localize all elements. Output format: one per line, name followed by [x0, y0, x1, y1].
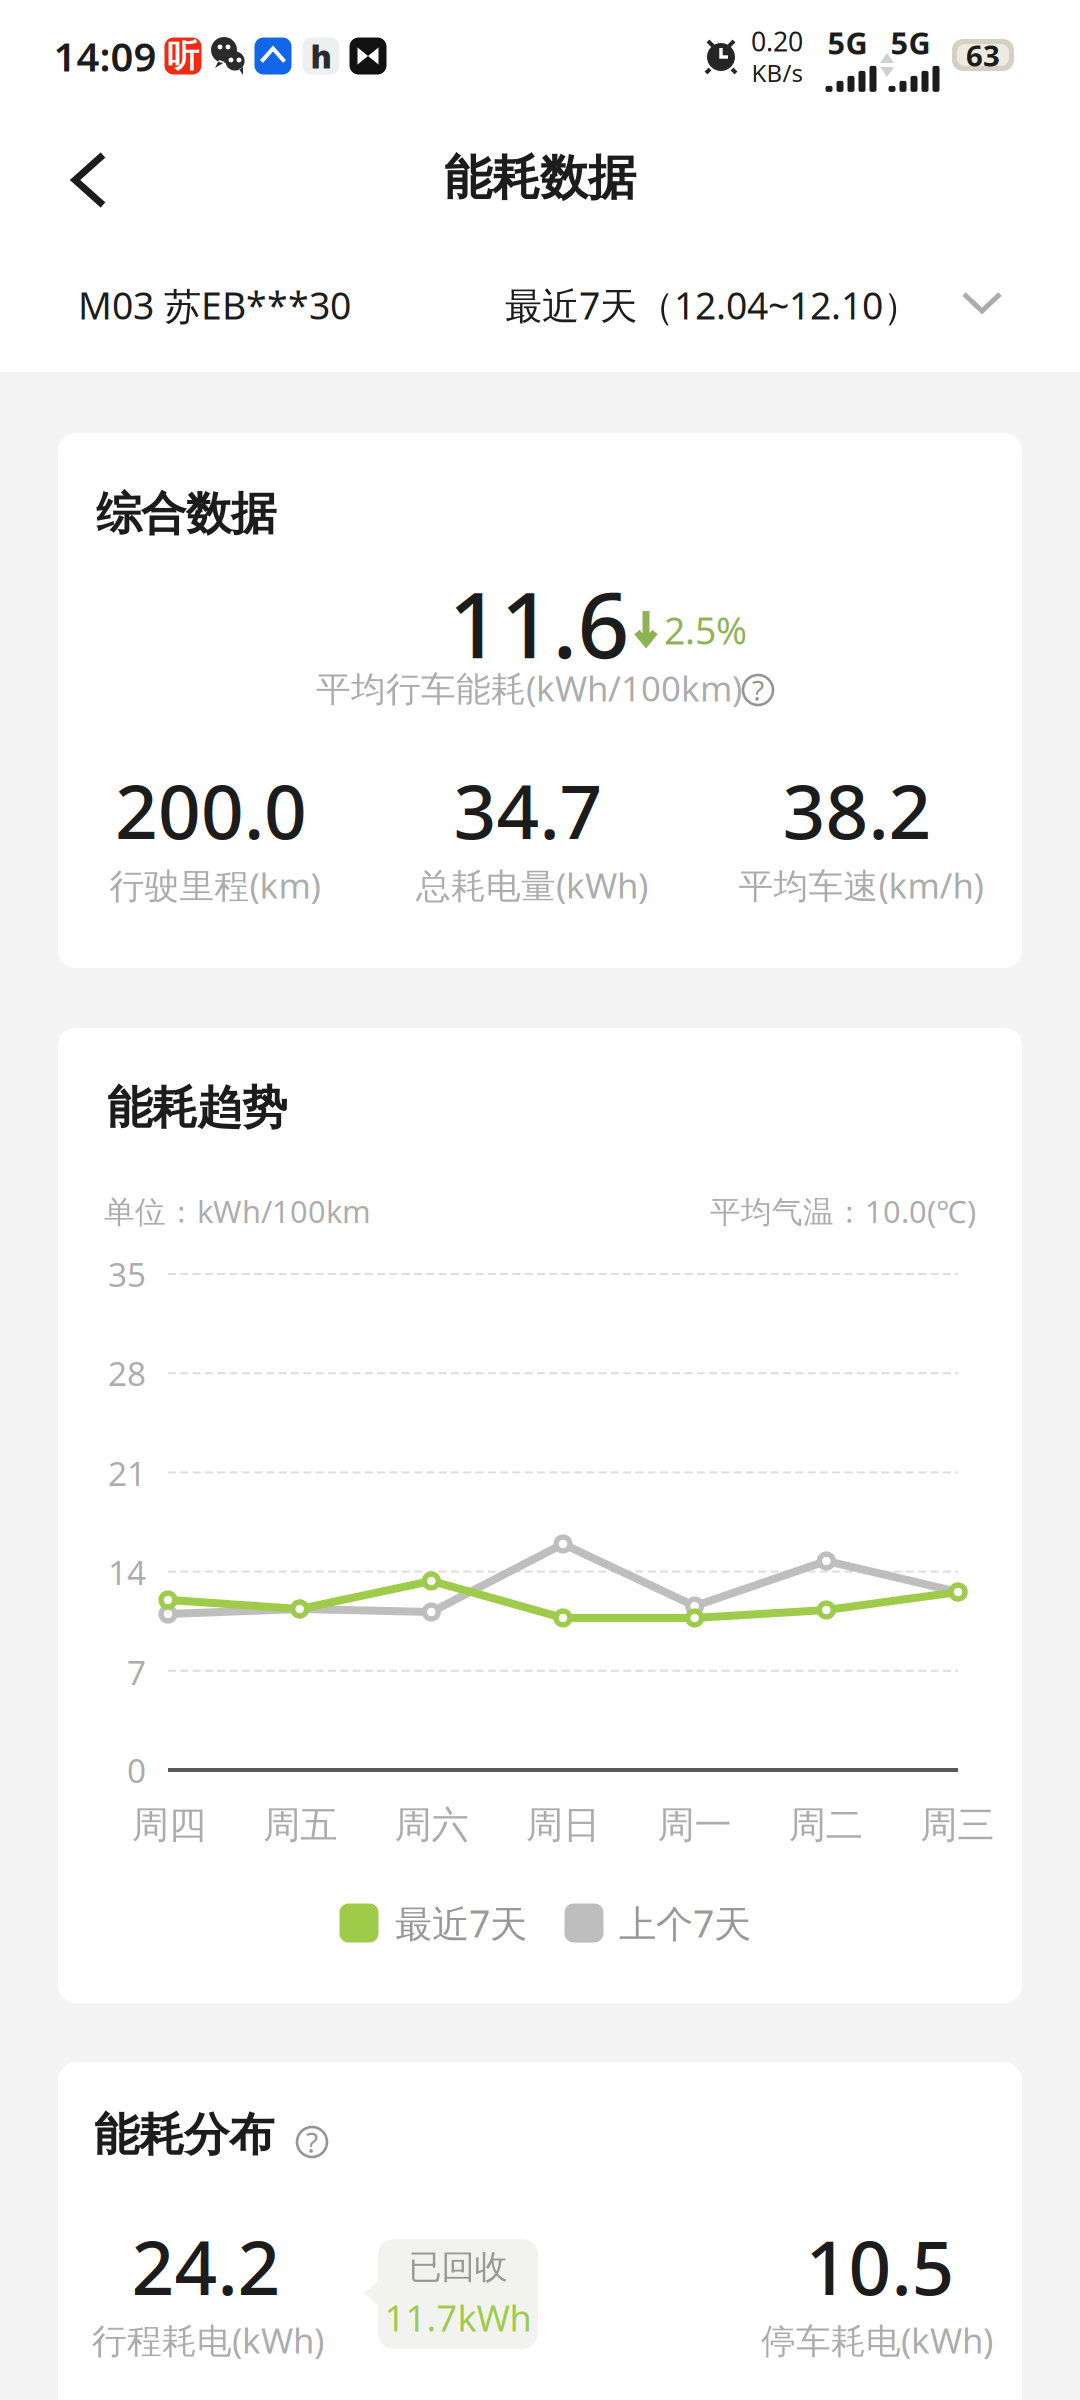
staticText: 0.20 — [751, 23, 803, 59]
staticText: 能耗数据 — [444, 148, 636, 207]
staticText: 已回收 — [408, 2247, 507, 2287]
staticText: 34.7 — [453, 760, 602, 860]
staticText: 24.2 — [131, 2216, 280, 2316]
staticText: 周三 — [920, 1802, 994, 1848]
staticText: 28 — [108, 1351, 146, 1395]
staticText: 能耗分布 — [94, 2107, 274, 2163]
button[interactable]: Help — [295, 2125, 329, 2159]
staticText: 周六 — [395, 1802, 469, 1848]
staticText: 周五 — [263, 1802, 337, 1848]
staticText: 能耗趋势 — [107, 1080, 287, 1136]
staticText: 10.5 — [805, 2216, 954, 2316]
staticText: 停车耗电(kWh) — [761, 2317, 993, 2363]
staticText: 5G — [890, 22, 930, 63]
staticText: 最近7天（12.04~12.10） — [505, 280, 920, 330]
staticText: 11.6 — [448, 563, 629, 683]
staticText: 听 — [167, 36, 199, 76]
staticText: 周二 — [789, 1802, 863, 1848]
staticText: 行驶里程(km) — [109, 862, 320, 908]
staticText: h — [310, 35, 331, 77]
staticText: 200.0 — [115, 760, 307, 860]
staticText: 平均行车能耗(kWh/100km) — [316, 665, 742, 711]
staticText: 21 — [108, 1451, 146, 1495]
staticText: 7 — [127, 1650, 146, 1694]
button[interactable]: Back — [0, 0, 1080, 372]
staticText: 5G — [827, 22, 867, 63]
staticText: 周日 — [526, 1802, 600, 1848]
staticText: 63 — [966, 35, 1000, 74]
staticText: 综合数据 — [96, 486, 276, 542]
staticText: 14 — [108, 1550, 146, 1594]
staticText: ? — [752, 671, 764, 709]
staticText: 周四 — [132, 1802, 206, 1848]
button[interactable]: 最近7天（12.04~12.10） — [0, 0, 1080, 2400]
staticText: 38.2 — [782, 760, 931, 860]
staticText: 总耗电量(kWh) — [416, 862, 648, 908]
staticText: 11.7kWh — [384, 2294, 531, 2341]
staticText: 周一 — [657, 1802, 731, 1848]
staticText: M03 苏EB***30 — [78, 280, 351, 330]
staticText: 0 — [127, 1748, 146, 1792]
staticText: 单位：kWh/100km — [104, 1191, 371, 1231]
staticText: KB/s — [751, 57, 802, 89]
staticText: 14:09 — [53, 29, 156, 82]
staticText: 2.5% — [664, 605, 747, 655]
staticText: 平均车速(km/h) — [738, 862, 983, 908]
staticText: 上个7天 — [619, 1898, 751, 1948]
staticText: 行程耗电(kWh) — [92, 2317, 324, 2363]
staticText: 最近7天 — [395, 1898, 527, 1948]
staticText: 平均气温：10.0(℃) — [710, 1191, 976, 1231]
button[interactable]: Help — [741, 673, 775, 707]
staticText: 35 — [108, 1252, 146, 1296]
staticText: ? — [306, 2123, 318, 2161]
